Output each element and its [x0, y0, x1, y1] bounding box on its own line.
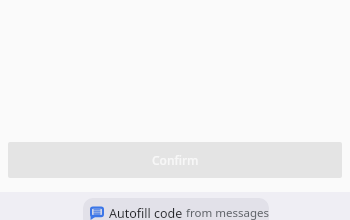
- staticText: Autofill code: [109, 205, 183, 220]
- button[interactable]: Autofill code: [83, 198, 269, 220]
- staticText: from messages: [186, 205, 269, 220]
- staticText: Confirm: [152, 152, 199, 168]
